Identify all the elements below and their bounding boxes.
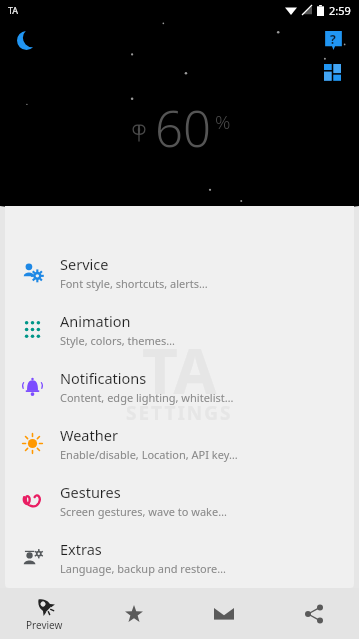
staticText: % [215, 109, 231, 135]
staticText: Enable/disable, Location, API key… [60, 447, 238, 462]
staticText: Style, colors, themes… [60, 333, 175, 348]
staticText: Language, backup and restore… [60, 561, 226, 576]
staticText: Weather [60, 425, 118, 445]
button[interactable]: Mail [179, 588, 269, 639]
staticText: Content, edge lighting, whitelist… [60, 390, 234, 405]
staticText: 2:59 [329, 3, 351, 18]
button[interactable]: Night mode [13, 27, 39, 53]
staticText: ? [330, 31, 336, 47]
staticText: Screen gestures, wave to wake… [60, 504, 227, 519]
staticText: Preview [26, 618, 63, 632]
staticText: SETTINGS [126, 400, 233, 426]
button[interactable]: Gestures [5, 472, 354, 529]
button[interactable]: Notifications [5, 358, 354, 415]
staticText: Notifications [60, 368, 147, 388]
button[interactable]: Animation [5, 301, 354, 358]
button[interactable]: Share [269, 588, 359, 639]
button[interactable]: Favorites [89, 588, 179, 639]
button[interactable]: Help [321, 28, 345, 52]
staticText: Extras [60, 539, 102, 559]
staticText: Font style, shortcuts, alerts… [60, 276, 208, 291]
staticText: TA [8, 4, 19, 16]
staticText: 60 [155, 95, 211, 162]
button[interactable]: Weather [5, 415, 354, 472]
button[interactable]: Preview [0, 588, 89, 639]
staticText: Animation [60, 311, 131, 331]
button[interactable]: Extras [5, 529, 354, 586]
button[interactable]: Service [5, 244, 354, 301]
button[interactable]: Dashboard [321, 61, 343, 83]
staticText: Gestures [60, 482, 121, 502]
staticText: Service [60, 254, 109, 274]
staticText: TA [142, 328, 217, 412]
